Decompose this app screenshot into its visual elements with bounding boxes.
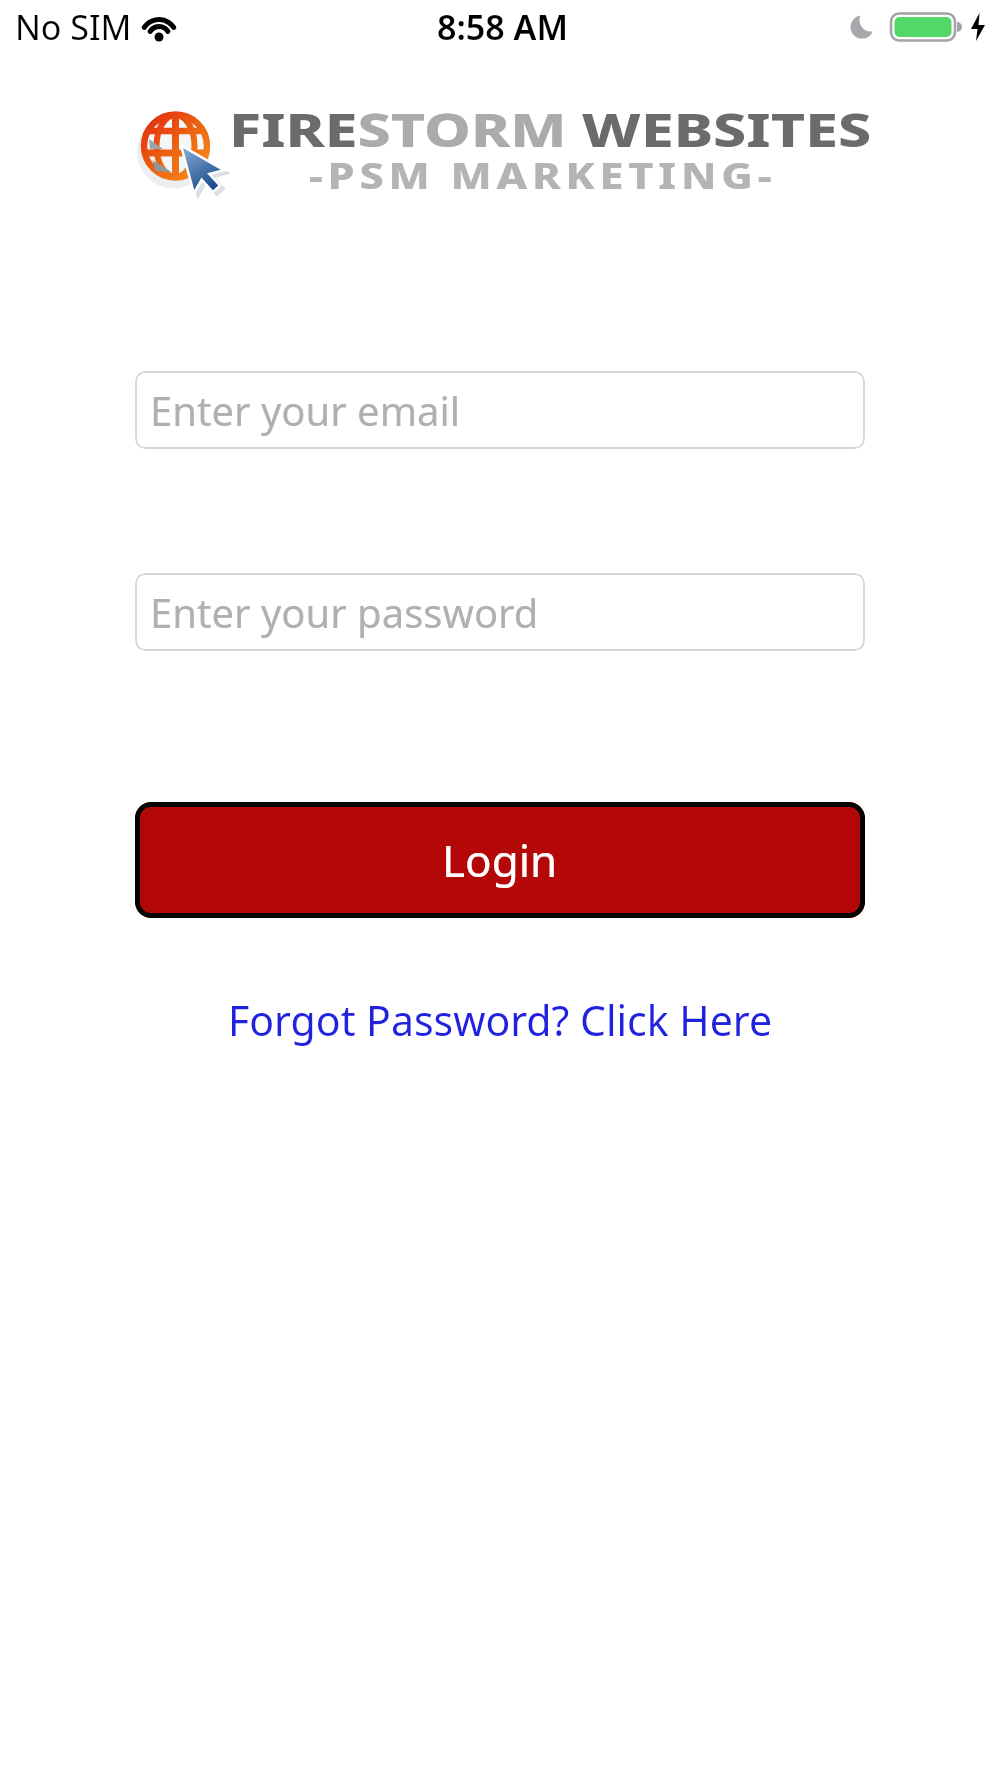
button[interactable]: Forgot Password? Click Here [228, 992, 773, 1048]
button[interactable]: Login [135, 802, 865, 918]
staticText: Login [442, 830, 558, 890]
staticText: No SIM [15, 4, 132, 50]
button[interactable]: Enter your password [135, 573, 865, 651]
staticText: FIRESTORM WEBSITES [229, 98, 872, 161]
staticText: 8:58 AM [437, 4, 569, 50]
staticText: Forgot Password? Click Here [228, 992, 773, 1048]
staticText: Enter your email [150, 383, 461, 437]
button[interactable]: Enter your email [135, 371, 865, 449]
staticText: Enter your password [150, 585, 539, 639]
staticText: -PSM MARKETING- [309, 151, 777, 200]
